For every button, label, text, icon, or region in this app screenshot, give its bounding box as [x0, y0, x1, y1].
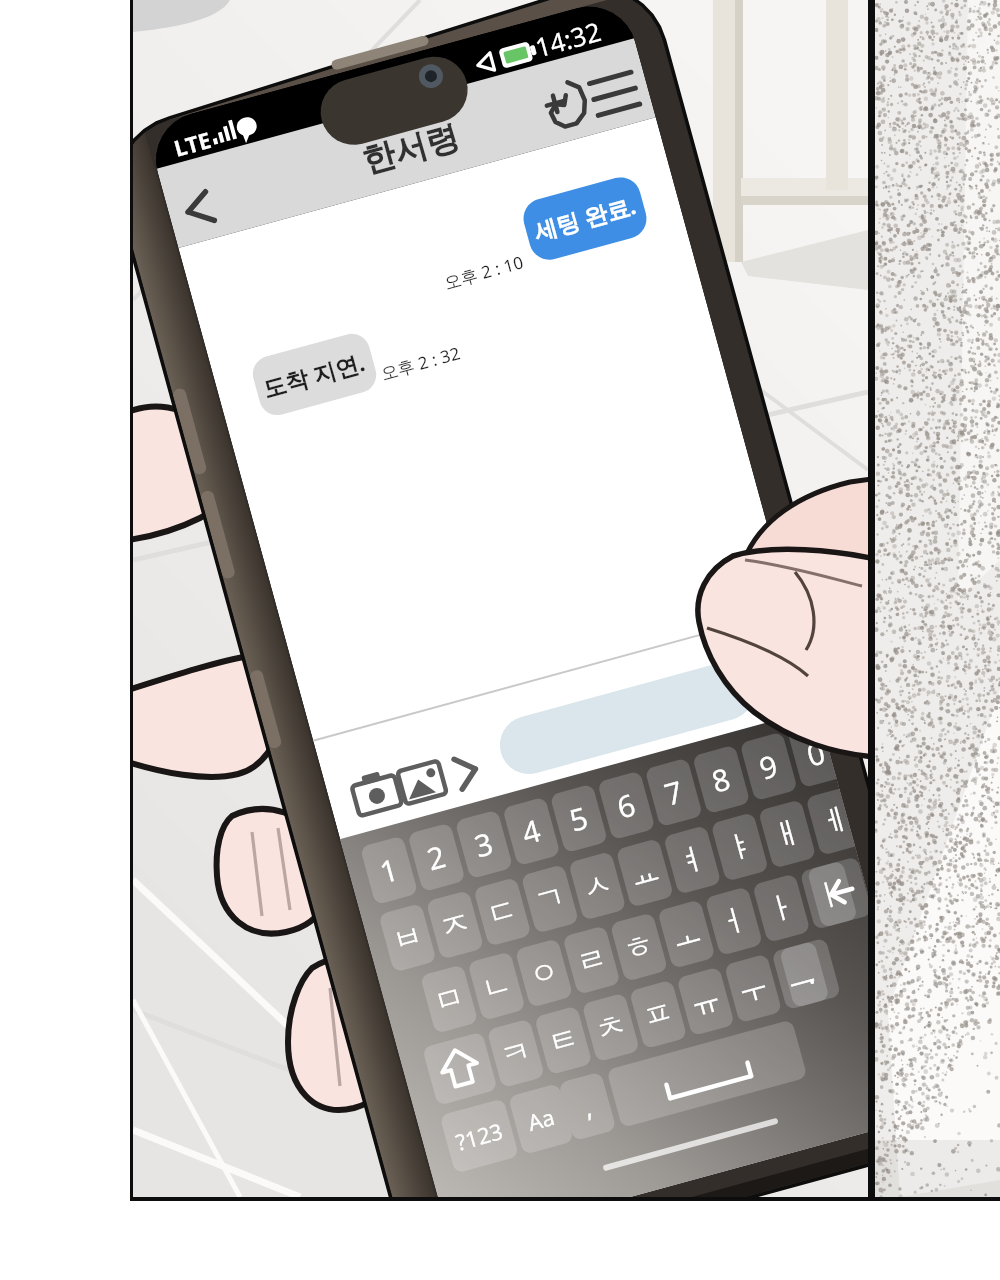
button[interactable]: [0, 0, 1000, 1280]
